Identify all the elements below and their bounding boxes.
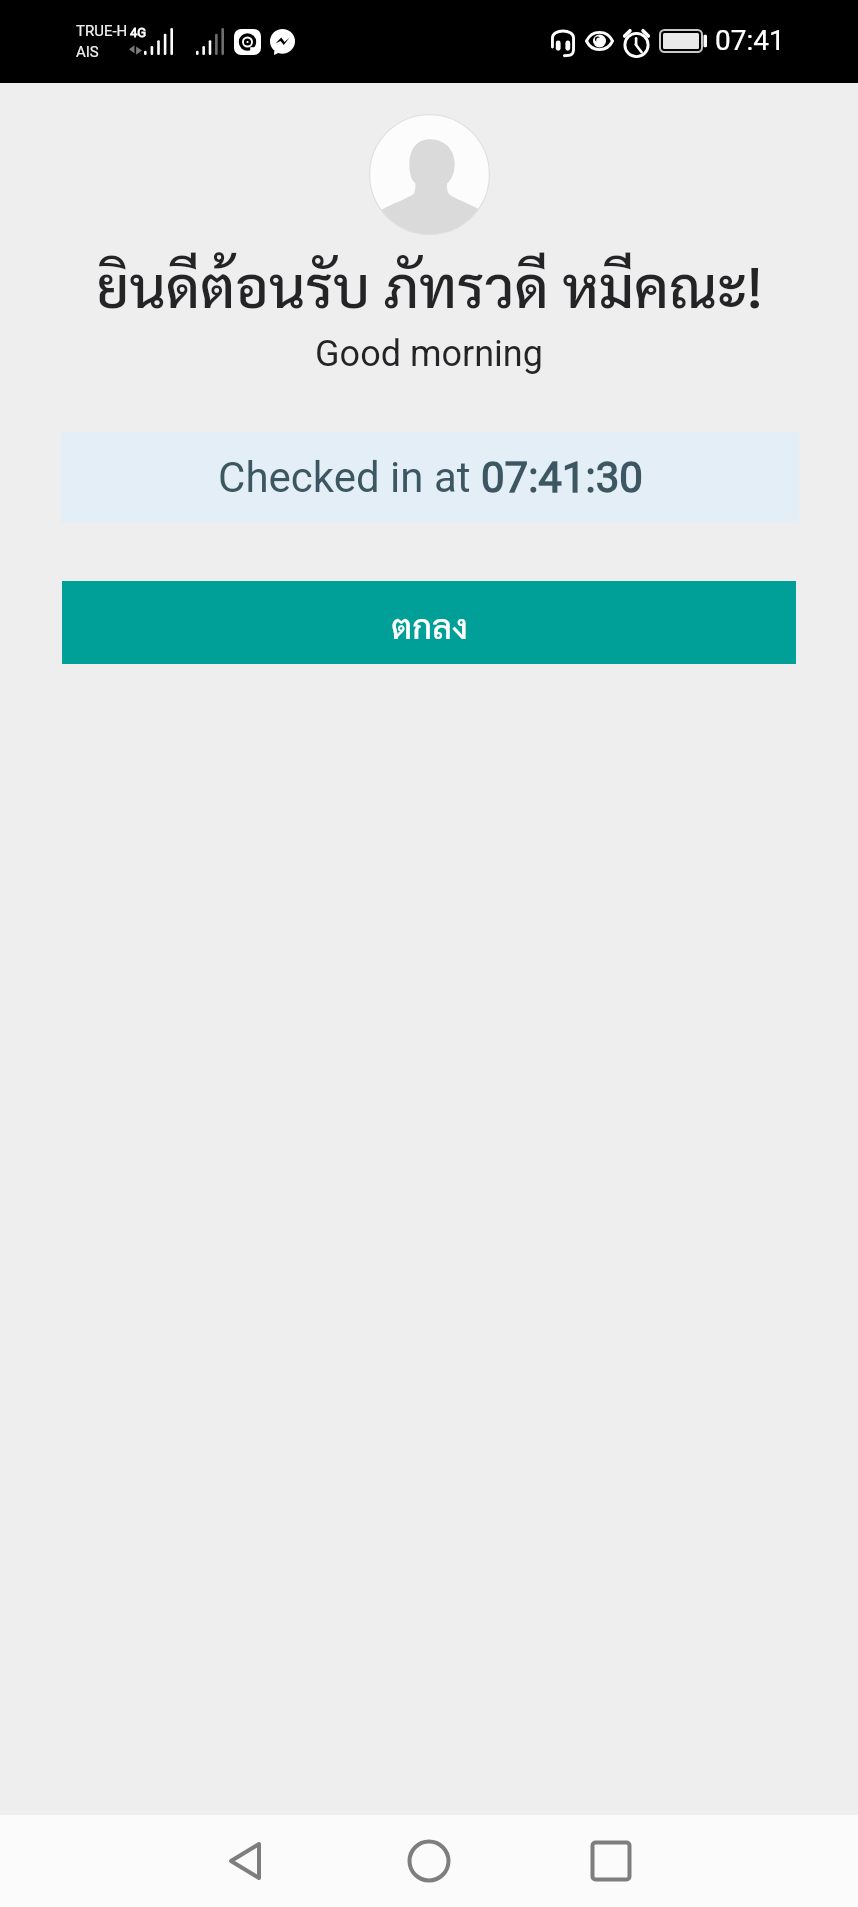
button[interactable]: Recents <box>565 1831 657 1891</box>
staticText: TRUE-H <box>76 22 128 40</box>
staticText: ยินดีต้อนรับ ภัทรวดี หมีคณะ! <box>0 247 858 321</box>
staticText: 07:41 <box>715 24 785 57</box>
staticText: AIS <box>76 43 99 61</box>
button[interactable]: Back <box>199 1831 291 1891</box>
staticText: 4G <box>130 25 147 40</box>
staticText: ตกลง <box>391 603 468 647</box>
button[interactable]: Checked in at 07:41:30 <box>61 432 799 523</box>
staticText: Good morning <box>0 333 858 375</box>
button[interactable]: Home <box>383 1831 475 1891</box>
staticText: Checked in at 07:41:30 <box>218 453 643 502</box>
button[interactable]: ตกลง <box>62 581 796 664</box>
